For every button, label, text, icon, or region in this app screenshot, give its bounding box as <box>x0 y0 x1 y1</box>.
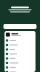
button[interactable] <box>4 43 35 47</box>
button[interactable] <box>4 52 35 56</box>
button[interactable] <box>4 61 35 65</box>
button[interactable] <box>4 65 35 70</box>
button[interactable] <box>4 70 35 72</box>
button[interactable] <box>0 24 40 29</box>
button[interactable] <box>4 38 35 43</box>
button[interactable] <box>4 47 35 52</box>
button[interactable] <box>4 56 35 61</box>
